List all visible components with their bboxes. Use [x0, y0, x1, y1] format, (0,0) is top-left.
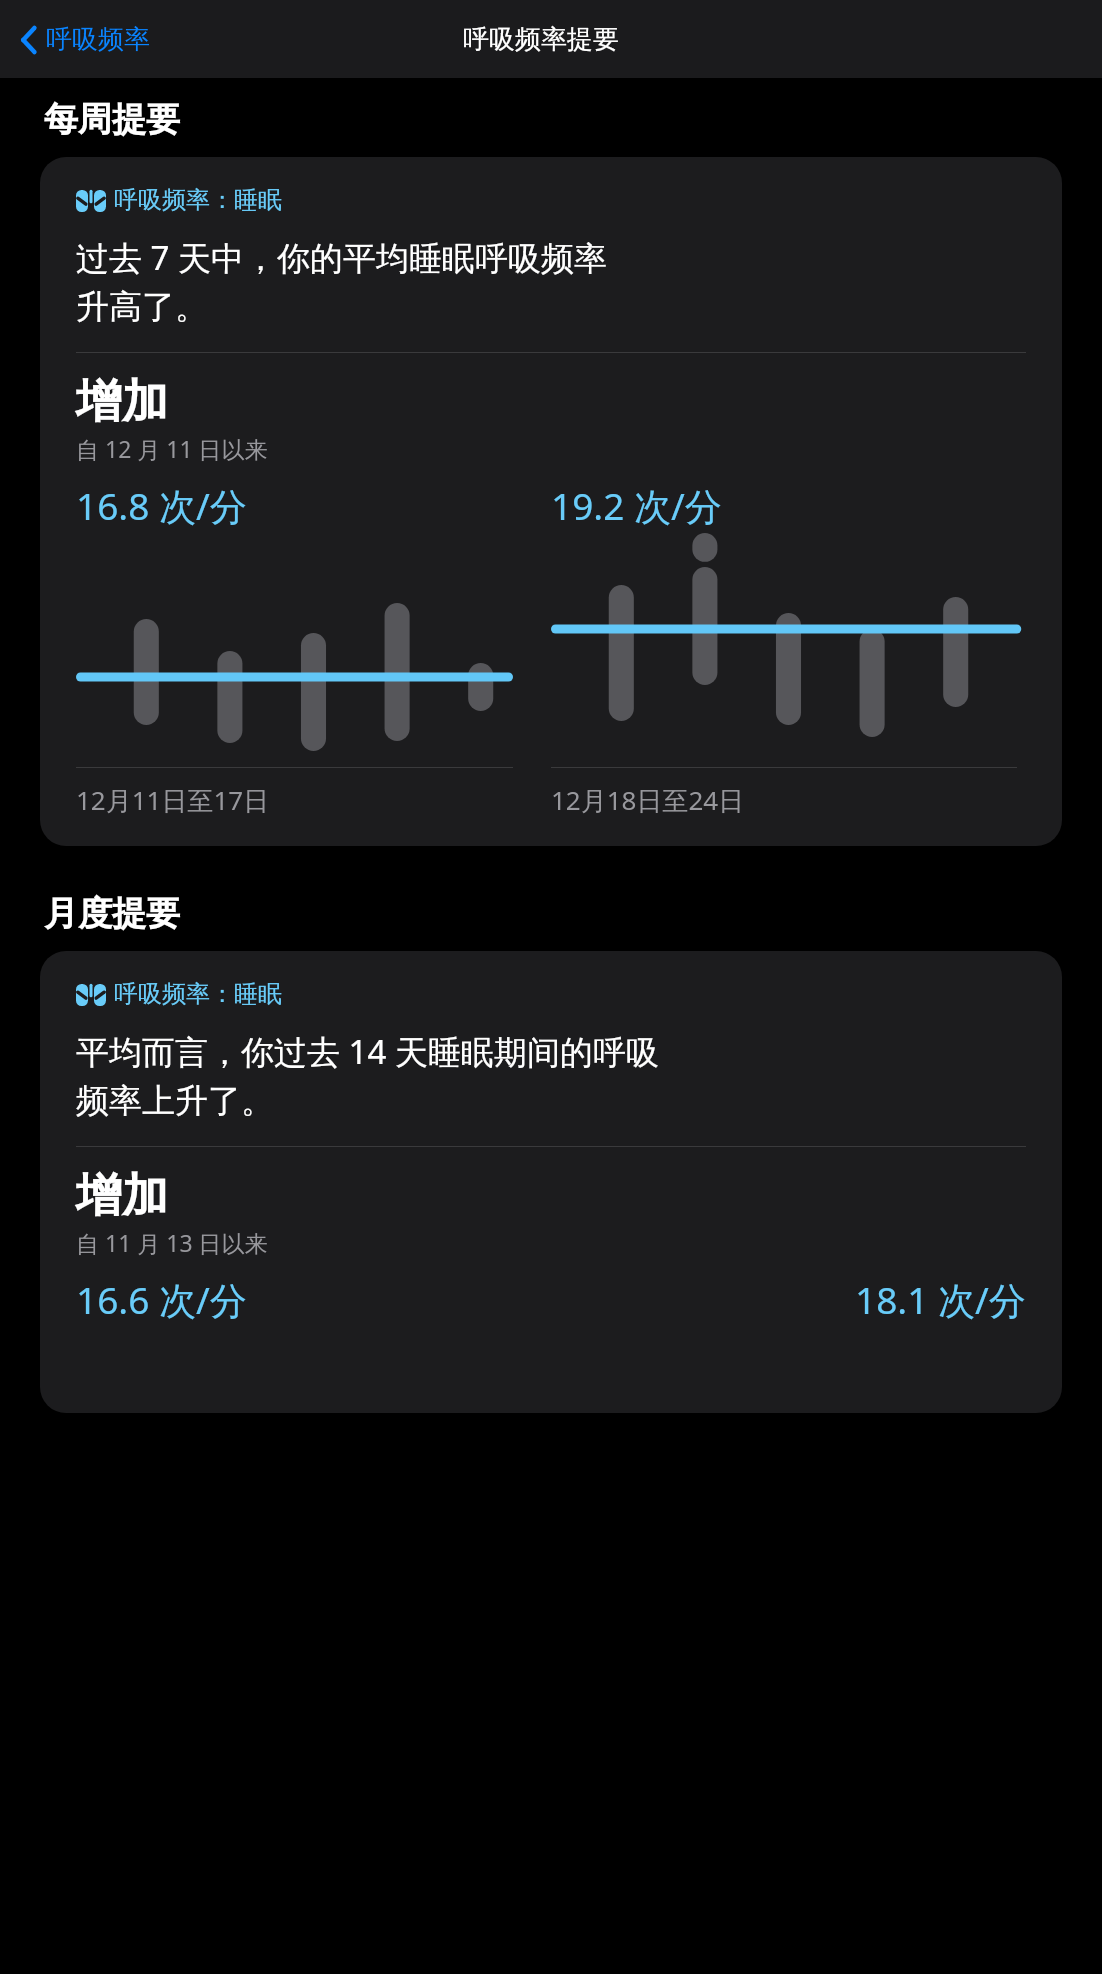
- staticText: 16.6 次/分: [76, 1274, 247, 1325]
- staticText: 每周提要: [44, 98, 180, 141]
- other: Respiratory rate: [76, 189, 106, 212]
- staticText: 增加: [76, 373, 168, 431]
- button[interactable]: Respiratory rate: [40, 951, 1062, 1413]
- staticText: 呼吸频率提要: [463, 23, 619, 56]
- staticText: 月度提要: [44, 892, 180, 935]
- other: Respiratory rate: [76, 983, 106, 1006]
- staticText: 19.2 次/分: [551, 480, 722, 531]
- staticText: 12月18日至24日: [551, 782, 745, 818]
- staticText: 呼吸频率: [46, 23, 150, 56]
- staticText: 16.8 次/分: [76, 480, 247, 531]
- button[interactable]: Back: [12, 15, 158, 64]
- staticText: 18.1 次/分: [855, 1274, 1026, 1325]
- staticText: 平均而言，你过去 14 天睡眠期间的呼吸 频率上升了。: [76, 1029, 659, 1122]
- staticText: 12月11日至17日: [76, 782, 270, 818]
- staticText: 过去 7 天中，你的平均睡眠呼吸频率 升高了。: [76, 235, 608, 328]
- button[interactable]: Respiratory rate: [40, 157, 1062, 846]
- staticText: 增加: [76, 1167, 168, 1225]
- staticText: 呼吸频率：睡眠: [114, 979, 282, 1009]
- staticText: 自 11 月 13 日以来: [76, 1227, 268, 1258]
- staticText: 自 12 月 11 日以来: [76, 433, 268, 464]
- other: Back: [20, 25, 38, 55]
- staticText: 呼吸频率：睡眠: [114, 185, 282, 215]
